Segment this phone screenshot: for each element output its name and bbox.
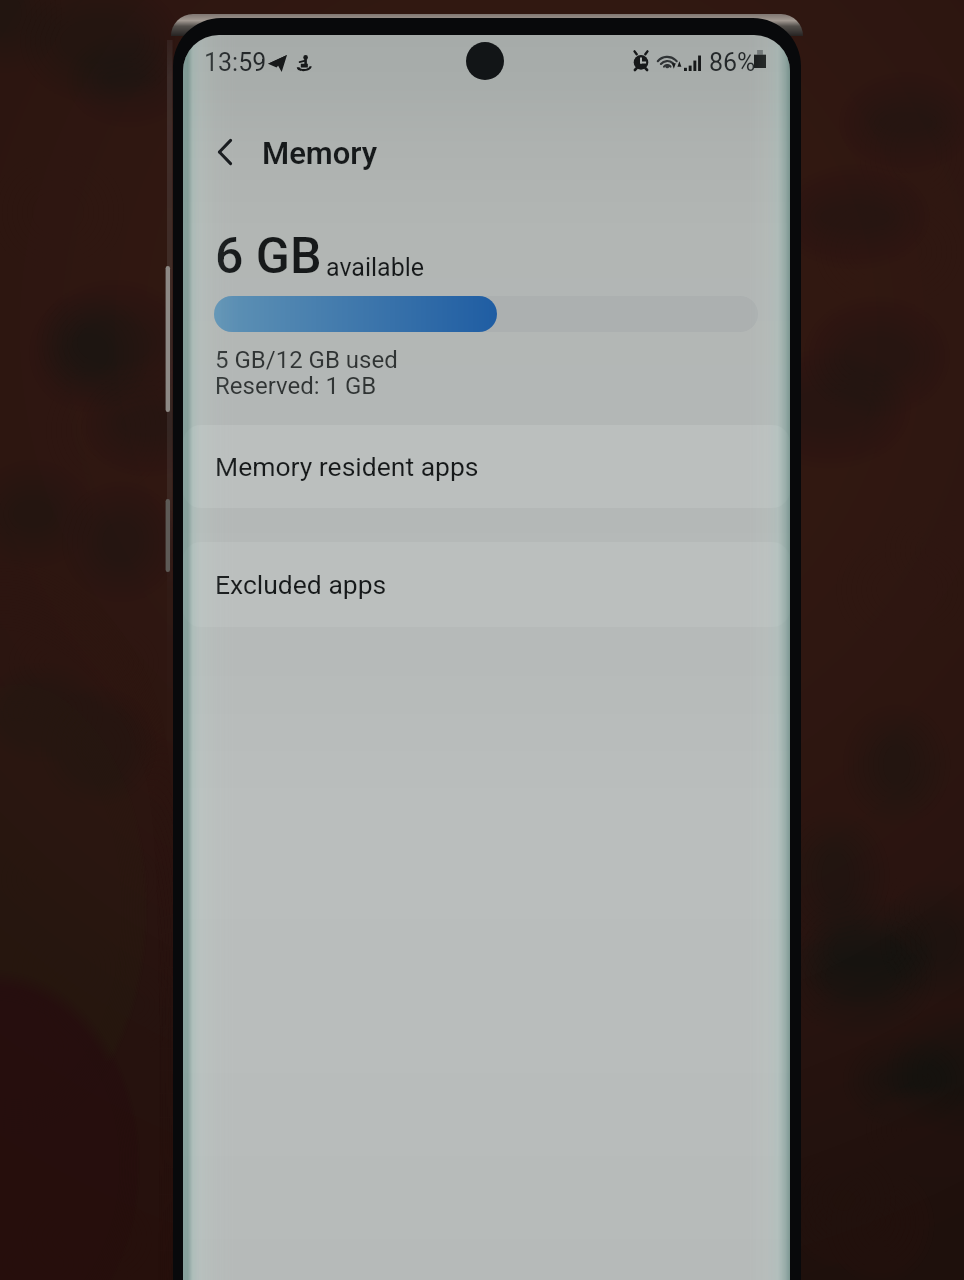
staticText: Memory resident apps (215, 451, 479, 482)
staticText: Memory (262, 135, 378, 171)
staticText: 13:59 (204, 48, 267, 77)
button[interactable]: Memory resident apps (183, 425, 790, 508)
button[interactable]: Excluded apps (183, 542, 790, 627)
button[interactable]: Back (195, 122, 255, 182)
staticText: 86% (709, 48, 756, 77)
staticText: Excluded apps (215, 569, 387, 600)
staticText: 6 GB (215, 227, 322, 286)
staticText: Reserved: 1 GB (215, 372, 377, 400)
staticText: available (326, 253, 425, 282)
staticText: 5 GB/12 GB used (215, 346, 398, 374)
